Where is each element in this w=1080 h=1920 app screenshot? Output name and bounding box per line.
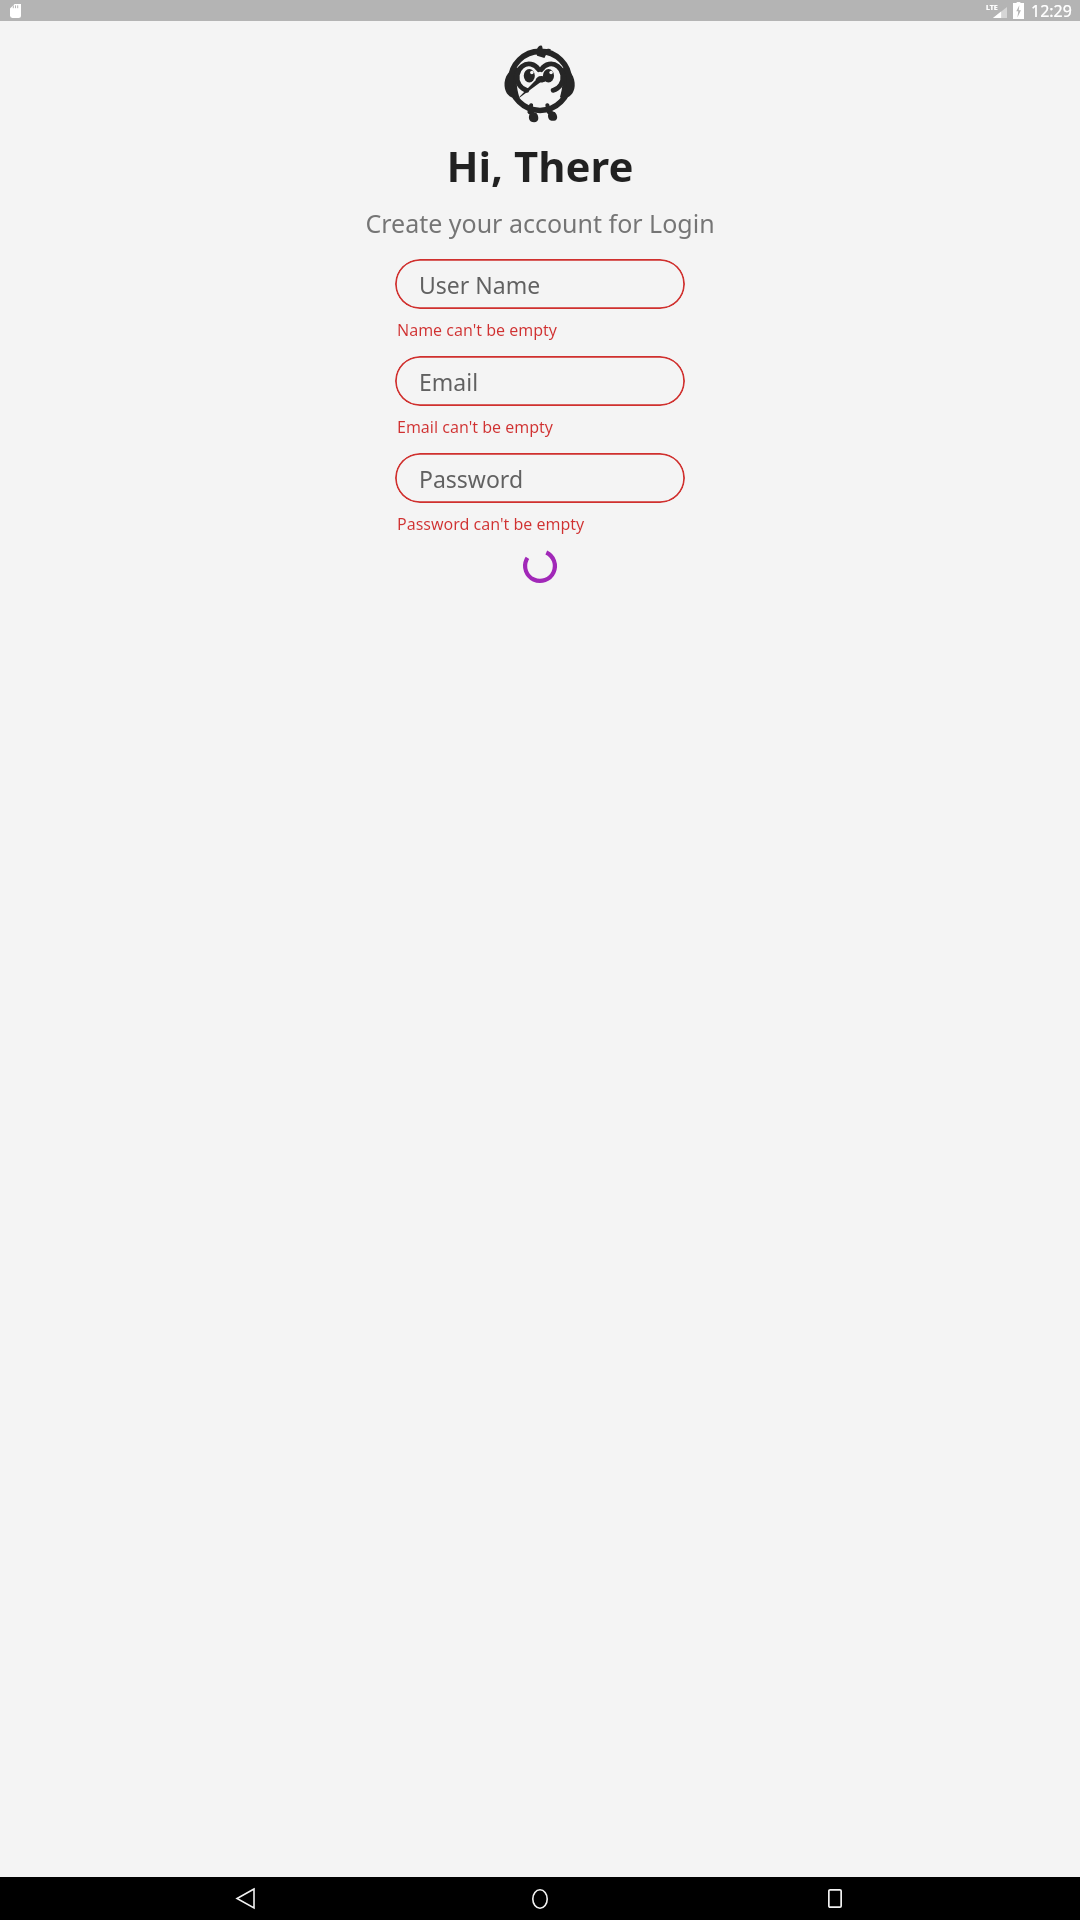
staticText: Hi, There xyxy=(446,137,634,194)
button[interactable]: Home xyxy=(490,1877,590,1920)
staticText: Email xyxy=(419,366,479,397)
staticText: Password can't be empty xyxy=(397,513,585,535)
staticText: Password xyxy=(419,463,524,494)
button[interactable]: User Name xyxy=(395,259,685,309)
button[interactable]: Back xyxy=(195,1877,295,1920)
staticText: Name can't be empty xyxy=(397,319,557,341)
button[interactable]: Password xyxy=(395,453,685,503)
staticText: LTE xyxy=(986,3,998,13)
staticText: Email can't be empty xyxy=(397,416,553,438)
staticText: 12:29 xyxy=(1031,0,1072,21)
staticText: User Name xyxy=(419,269,541,300)
button[interactable]: Recent apps xyxy=(785,1877,885,1920)
staticText: Create your account for Login xyxy=(365,206,715,240)
button[interactable]: Email xyxy=(395,356,685,406)
